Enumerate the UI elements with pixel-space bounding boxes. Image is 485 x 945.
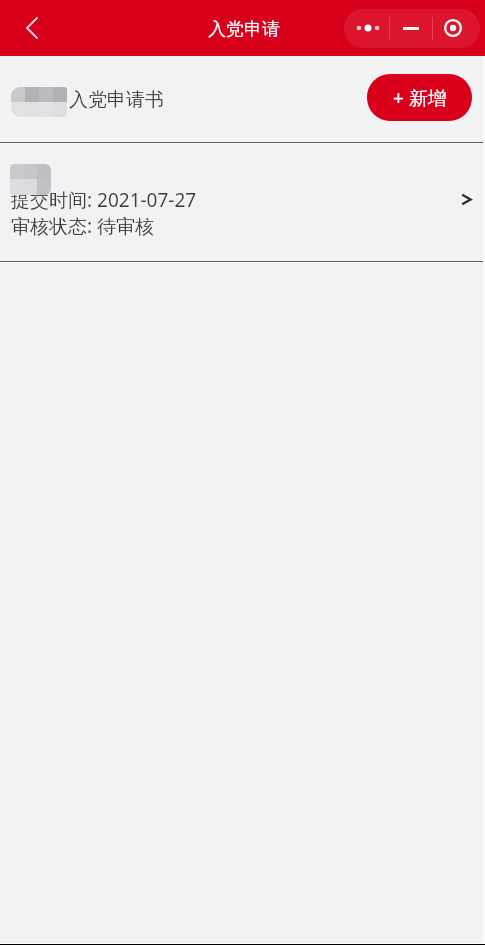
staticText: 审核状态: 待审核 [11,213,155,239]
button[interactable]: 提交时间: 2021-07-27 [0,143,483,261]
staticText: 提交时间: 2021-07-27 [11,187,197,213]
button[interactable]: More options [344,9,389,48]
staticText: 入党申请 [208,18,280,41]
button[interactable]: Minimize [390,9,432,48]
staticText: 入党申请书 [69,88,164,112]
button[interactable]: Back [0,0,56,56]
button[interactable]: Close [433,9,480,48]
staticText: + 新增 [393,85,447,111]
button[interactable]: + 新增 [367,74,472,121]
